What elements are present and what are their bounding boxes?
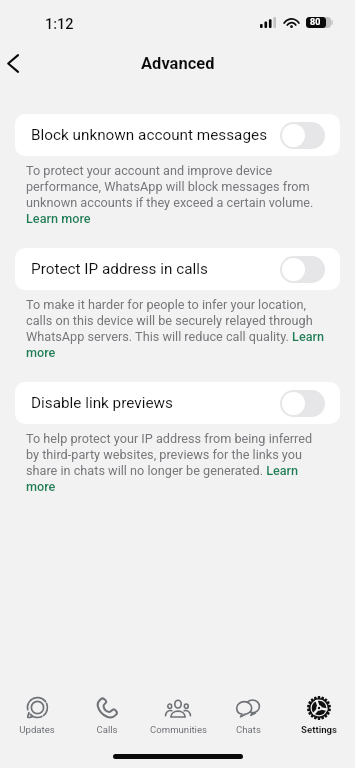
button[interactable]: Block unknown account messages bbox=[15, 114, 340, 156]
button[interactable]: Back bbox=[0, 47, 29, 79]
button[interactable]: Calls bbox=[73, 684, 141, 735]
staticText: To make it harder for people to infer yo… bbox=[26, 297, 327, 360]
button[interactable]: Updates bbox=[3, 684, 71, 735]
staticText: 1:12 bbox=[45, 16, 74, 33]
staticText: Settings bbox=[301, 724, 337, 735]
staticText: Disable link previews bbox=[31, 394, 173, 412]
button[interactable]: Protect IP address in calls bbox=[15, 248, 340, 290]
staticText: Calls bbox=[96, 724, 118, 735]
staticText: To help protect your IP address from bei… bbox=[26, 431, 327, 494]
staticText: Chats bbox=[236, 724, 261, 735]
button[interactable]: Communities bbox=[144, 684, 212, 735]
staticText: Block unknown account messages bbox=[31, 126, 268, 144]
staticText: Protect IP address in calls bbox=[31, 260, 208, 278]
button[interactable]: Chats bbox=[214, 684, 282, 735]
button[interactable]: Settings bbox=[285, 684, 353, 735]
staticText: Advanced bbox=[141, 54, 215, 73]
staticText: Communities bbox=[150, 724, 207, 735]
staticText: Updates bbox=[19, 724, 55, 735]
button[interactable]: Disable link previews bbox=[15, 382, 340, 424]
staticText: To protect your account and improve devi… bbox=[26, 163, 327, 226]
staticText: 80 bbox=[310, 17, 321, 28]
